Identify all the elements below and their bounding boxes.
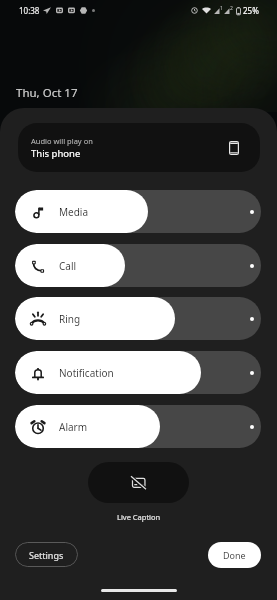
staticText: Audio will play on [31,136,93,146]
staticText: Call [59,259,77,273]
staticText: Alarm [59,420,88,434]
button[interactable]: Done [208,542,261,568]
button[interactable]: Ring [15,297,261,340]
staticText: Done [223,549,246,561]
button[interactable]: Notification [15,351,261,394]
staticText: Live Caption [117,512,161,522]
button[interactable]: Media [15,190,261,233]
staticText: 1 [220,5,223,12]
staticText: Settings [29,549,64,561]
staticText: Media [59,205,89,219]
staticText: Notification [59,366,114,380]
button[interactable]: Settings [15,542,78,567]
staticText: Ring [59,312,81,326]
staticText: This phone [31,147,81,160]
staticText: Thu, Oct 17 [16,85,78,101]
staticText: 25% [243,5,259,16]
button[interactable]: Live Caption [88,462,189,503]
button[interactable]: Alarm [15,405,261,448]
staticText: 10:38 [19,5,40,16]
button[interactable]: Call [15,244,261,287]
staticText: 2 [230,5,233,12]
button[interactable]: Audio will play on [18,123,260,172]
